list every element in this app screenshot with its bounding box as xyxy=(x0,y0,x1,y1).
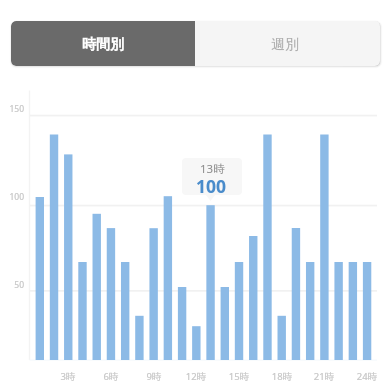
button[interactable]: 時間別 xyxy=(11,21,195,66)
staticText: 6時 xyxy=(87,370,135,383)
button[interactable]: 週別 xyxy=(195,21,380,66)
staticText: 100 xyxy=(0,191,24,203)
staticText: 50 xyxy=(0,279,24,291)
button[interactable]: 13時 100 xyxy=(182,158,242,195)
staticText: 13時 xyxy=(200,161,225,177)
staticText: 9時 xyxy=(130,370,178,383)
staticText: 時間別 xyxy=(82,36,124,54)
staticText: 3時 xyxy=(44,370,92,383)
staticText: 21時 xyxy=(300,370,348,383)
staticText: 週別 xyxy=(271,36,299,54)
staticText: 24時 xyxy=(343,370,390,383)
staticText: 150 xyxy=(0,103,24,115)
staticText: 15時 xyxy=(215,370,263,383)
staticText: 100 xyxy=(196,174,227,195)
staticText: 12時 xyxy=(172,370,220,383)
staticText: 18時 xyxy=(258,370,306,383)
